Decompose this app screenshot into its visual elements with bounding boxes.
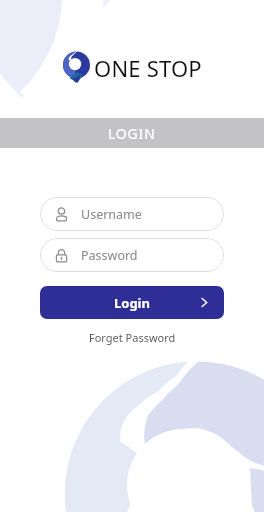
staticText: Password [81, 247, 138, 264]
button[interactable]: Password [40, 238, 224, 272]
staticText: LOGIN [108, 124, 156, 143]
button[interactable]: Forget Password [89, 330, 176, 345]
button[interactable]: Login [40, 286, 224, 319]
button[interactable]: Username [40, 197, 224, 231]
staticText: Login [114, 294, 150, 312]
staticText: ONE STOP [94, 53, 202, 83]
staticText: Username [81, 206, 142, 223]
